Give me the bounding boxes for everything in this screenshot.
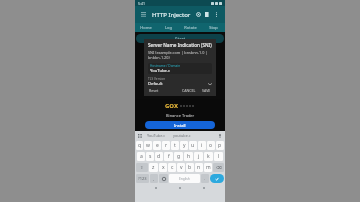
button[interactable]: Rotate bbox=[179, 23, 202, 32]
staticText: HTTP Injector bbox=[152, 11, 191, 19]
staticText: YouTube.c bbox=[150, 68, 171, 74]
staticText: g bbox=[177, 153, 181, 160]
button[interactable]: Voice input bbox=[218, 134, 222, 138]
staticText: Start bbox=[175, 36, 186, 42]
staticText: e bbox=[156, 142, 159, 149]
button[interactable]: r bbox=[162, 141, 170, 150]
button[interactable]: SAVE bbox=[201, 87, 212, 93]
staticText: s bbox=[149, 153, 152, 160]
button[interactable]: Reset bbox=[148, 87, 160, 93]
button[interactable]: g bbox=[174, 152, 183, 161]
button[interactable]: Keyboard apps bbox=[138, 134, 142, 138]
staticText: Hostname / Domain bbox=[150, 64, 181, 68]
staticText: h bbox=[187, 153, 191, 160]
staticText: z bbox=[152, 164, 155, 171]
button[interactable]: Start bbox=[136, 34, 224, 43]
staticText: f bbox=[168, 153, 170, 160]
button[interactable]: youtube.c bbox=[173, 133, 191, 138]
staticText: 5:41 bbox=[138, 1, 145, 6]
button[interactable]: n bbox=[195, 163, 203, 172]
button[interactable]: c bbox=[168, 163, 176, 172]
button[interactable]: Back bbox=[153, 185, 159, 191]
button[interactable]: a bbox=[137, 152, 145, 161]
button[interactable]: x bbox=[159, 163, 167, 172]
button[interactable]: l bbox=[214, 152, 223, 161]
staticText: Server Name Indication (SNI) bbox=[148, 42, 212, 48]
staticText: w bbox=[146, 142, 150, 149]
staticText: u bbox=[191, 142, 195, 149]
staticText: b bbox=[188, 164, 192, 171]
staticText: English bbox=[179, 177, 190, 181]
staticText: a bbox=[140, 153, 143, 160]
staticText: r bbox=[165, 142, 168, 149]
button[interactable]: d bbox=[155, 152, 163, 161]
button[interactable]: YouTube.c bbox=[147, 133, 166, 138]
staticText: t bbox=[174, 142, 176, 149]
staticText: Reset bbox=[149, 88, 159, 92]
button[interactable]: Open navigation menu bbox=[139, 10, 148, 19]
button[interactable]: t bbox=[171, 141, 179, 150]
staticText: d bbox=[157, 153, 161, 160]
button[interactable]: Files bbox=[203, 10, 212, 19]
staticText: Rotate bbox=[184, 25, 197, 30]
button[interactable]: Home bbox=[135, 23, 157, 32]
button[interactable]: Symbols bbox=[136, 174, 149, 183]
button[interactable]: Emoji bbox=[159, 174, 168, 183]
staticText: j bbox=[198, 153, 200, 160]
staticText: SNI (example.com | bnsbnn-1.0 | bnbbn-1.… bbox=[148, 50, 208, 60]
button[interactable]: k bbox=[204, 152, 213, 161]
button[interactable]: v bbox=[177, 163, 185, 172]
button[interactable]: More options bbox=[212, 10, 221, 19]
button[interactable]: CANCEL bbox=[181, 87, 197, 93]
staticText: k bbox=[207, 153, 210, 160]
button[interactable]: Shift bbox=[136, 163, 148, 172]
staticText: Log bbox=[165, 25, 172, 30]
staticText: n bbox=[197, 164, 201, 171]
button[interactable]: Space bbox=[169, 174, 200, 183]
staticText: Install bbox=[174, 123, 186, 128]
button[interactable]: i bbox=[198, 141, 206, 150]
staticText: . bbox=[204, 176, 206, 181]
staticText: m bbox=[206, 164, 211, 171]
staticText: x bbox=[162, 164, 165, 171]
staticText: ?123 bbox=[138, 176, 147, 181]
staticText: ⌫ bbox=[216, 165, 222, 170]
staticText: v bbox=[180, 164, 183, 171]
button[interactable]: s bbox=[146, 152, 154, 161]
button[interactable]: o bbox=[207, 141, 215, 150]
button[interactable]: Recents bbox=[201, 185, 207, 191]
staticText: , bbox=[153, 176, 155, 181]
button[interactable]: Home bbox=[177, 185, 183, 191]
button[interactable]: p bbox=[216, 141, 224, 150]
staticText: y bbox=[183, 142, 186, 149]
staticText: Binance Trader bbox=[166, 113, 195, 118]
button[interactable]: u bbox=[189, 141, 197, 150]
staticText: c bbox=[171, 164, 174, 171]
button[interactable]: Backspace bbox=[213, 163, 224, 172]
button[interactable]: m bbox=[204, 163, 212, 172]
button[interactable]: Comma bbox=[150, 174, 158, 183]
button[interactable]: Enter bbox=[210, 174, 224, 183]
button[interactable]: Install bbox=[145, 121, 215, 129]
button[interactable]: w bbox=[144, 141, 152, 150]
button[interactable]: Settings bbox=[194, 10, 203, 19]
button[interactable]: b bbox=[186, 163, 194, 172]
staticText: l bbox=[218, 153, 220, 160]
staticText: i bbox=[201, 142, 203, 149]
button[interactable]: f bbox=[164, 152, 173, 161]
staticText: Stop bbox=[209, 25, 218, 30]
staticText: Default bbox=[148, 81, 163, 87]
button[interactable]: e bbox=[153, 141, 161, 150]
staticText: CANCEL bbox=[182, 88, 196, 92]
button[interactable]: Stop bbox=[202, 23, 225, 32]
button[interactable]: Log bbox=[157, 23, 179, 32]
button[interactable]: Hostname / Domain bbox=[148, 63, 212, 74]
button[interactable]: z bbox=[149, 163, 158, 172]
button[interactable]: j bbox=[194, 152, 203, 161]
staticText: p bbox=[218, 142, 222, 149]
button[interactable]: y bbox=[180, 141, 188, 150]
staticText: ⇧ bbox=[140, 165, 144, 170]
button[interactable]: q bbox=[136, 141, 143, 150]
button[interactable]: h bbox=[184, 152, 193, 161]
